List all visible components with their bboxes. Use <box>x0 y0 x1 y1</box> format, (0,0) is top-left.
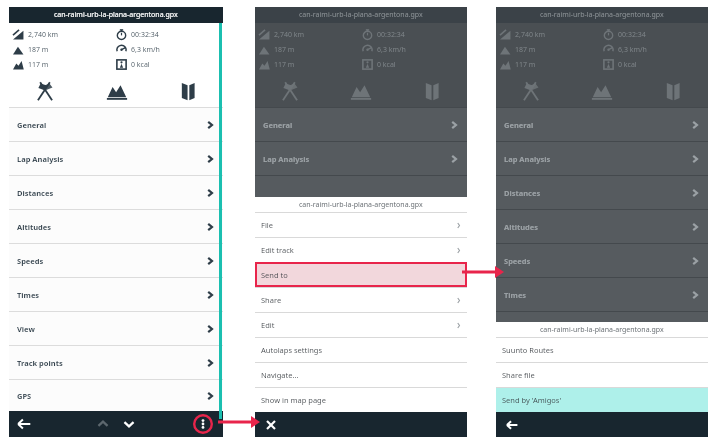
button[interactable]: GPS <box>9 380 223 411</box>
staticText: 00:32:34 <box>131 30 159 40</box>
staticText: 2,740 km <box>28 30 58 40</box>
button[interactable]: Share file <box>496 363 708 387</box>
button[interactable]: Altitudes <box>496 210 708 243</box>
button[interactable]: Share <box>255 288 467 312</box>
button[interactable]: Edit <box>255 313 467 337</box>
button[interactable]: Close <box>263 417 279 433</box>
staticText: Distances <box>17 188 54 198</box>
staticText: Navigate... <box>261 370 299 380</box>
staticText: Lap Analysis <box>504 154 551 164</box>
button[interactable]: Times <box>9 278 223 311</box>
button[interactable]: Speeds <box>9 244 223 277</box>
staticText: General <box>17 120 47 130</box>
staticText: 117 m <box>515 60 536 70</box>
staticText: can-raimi-urb-la-plana-argentona.gpx <box>54 10 178 20</box>
staticText: Times <box>504 290 527 300</box>
button[interactable]: View <box>9 312 223 345</box>
staticText: 0 kcal <box>377 60 396 70</box>
staticText: Send to <box>261 270 288 280</box>
button[interactable]: Show in map page <box>255 388 467 412</box>
staticText: Share file <box>502 370 535 380</box>
button[interactable]: Distances <box>9 176 223 209</box>
staticText: can-raimi-urb-la-plana-argentona.gpx <box>540 325 664 335</box>
button[interactable]: Back <box>15 415 33 433</box>
button[interactable]: Track points <box>9 346 223 379</box>
button[interactable]: More options <box>193 414 213 434</box>
staticText: Show in map page <box>261 395 326 405</box>
staticText: Speeds <box>504 256 531 266</box>
staticText: 187 m <box>274 45 295 55</box>
staticText: 6,3 km/h <box>377 45 406 55</box>
button[interactable]: Autolaps settings <box>255 338 467 362</box>
staticText: GPS <box>17 391 32 401</box>
staticText: 187 m <box>515 45 536 55</box>
staticText: can-raimi-urb-la-plana-argentona.gpx <box>540 10 664 20</box>
button[interactable]: Lap Analysis <box>9 142 223 175</box>
button[interactable]: Lap Analysis <box>255 142 467 175</box>
button[interactable]: Altitudes <box>9 210 223 243</box>
staticText: can-raimi-urb-la-plana-argentona.gpx <box>299 200 423 210</box>
staticText: Altitudes <box>504 222 539 232</box>
staticText: 6,3 km/h <box>131 45 160 55</box>
button[interactable]: Back <box>504 417 520 433</box>
staticText: Send by 'Amigos' <box>502 395 562 405</box>
staticText: Edit track <box>261 245 294 255</box>
staticText: Altitudes <box>17 222 52 232</box>
staticText: Times <box>17 290 40 300</box>
staticText: 187 m <box>28 45 49 55</box>
button[interactable]: Previous <box>95 416 111 432</box>
staticText: 00:32:34 <box>618 30 646 40</box>
staticText: Distances <box>504 188 541 198</box>
button[interactable]: Lap Analysis <box>496 142 708 175</box>
button[interactable]: Navigate... <box>255 363 467 387</box>
button[interactable]: Distances <box>496 176 708 209</box>
button[interactable]: Times <box>496 278 708 311</box>
staticText: 0 kcal <box>618 60 637 70</box>
staticText: Edit <box>261 320 275 330</box>
staticText: can-raimi-urb-la-plana-argentona.gpx <box>299 10 423 20</box>
staticText: 00:32:34 <box>377 30 405 40</box>
staticText: General <box>263 120 293 130</box>
staticText: 6,3 km/h <box>618 45 647 55</box>
staticText: Lap Analysis <box>263 154 310 164</box>
button[interactable]: General <box>255 108 467 141</box>
staticText: File <box>261 220 273 230</box>
button[interactable]: Speeds <box>496 244 708 277</box>
button[interactable]: Send to <box>255 262 467 287</box>
staticText: Track points <box>17 358 63 368</box>
staticText: Speeds <box>17 256 44 266</box>
staticText: General <box>504 120 534 130</box>
staticText: Share <box>261 295 282 305</box>
button[interactable]: Next <box>121 416 137 432</box>
staticText: Lap Analysis <box>17 154 64 164</box>
staticText: Autolaps settings <box>261 345 322 355</box>
staticText: 2,740 km <box>515 30 545 40</box>
button[interactable]: File <box>255 213 467 237</box>
staticText: 117 m <box>274 60 295 70</box>
staticText: 117 m <box>28 60 49 70</box>
button[interactable]: Suunto Routes <box>496 338 708 362</box>
button[interactable]: Send by 'Amigos' <box>496 388 708 412</box>
button[interactable]: General <box>496 108 708 141</box>
button[interactable]: Edit track <box>255 238 467 262</box>
staticText: Suunto Routes <box>502 345 554 355</box>
staticText: View <box>17 324 35 334</box>
staticText: 0 kcal <box>131 60 150 70</box>
staticText: 2,740 km <box>274 30 304 40</box>
button[interactable]: General <box>9 108 223 141</box>
